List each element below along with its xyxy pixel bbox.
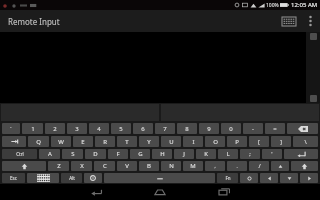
staticText: K xyxy=(204,150,208,158)
button[interactable]: M xyxy=(183,161,203,171)
button[interactable]: ] xyxy=(271,136,291,147)
staticText: 4 xyxy=(97,125,101,133)
button[interactable]: Recent apps xyxy=(199,184,249,200)
button[interactable]: [ xyxy=(249,136,269,147)
button[interactable]: 9 xyxy=(199,123,219,134)
button[interactable]: ctl xyxy=(240,173,258,183)
button[interactable]: enter xyxy=(284,149,318,159)
staticText: / xyxy=(258,162,261,170)
button[interactable]: X xyxy=(71,161,92,171)
staticText: 9 xyxy=(207,125,211,133)
button[interactable]: up xyxy=(271,161,289,171)
button[interactable]: U xyxy=(161,136,181,147)
button[interactable]: - xyxy=(243,123,263,134)
button[interactable]: shift xyxy=(2,161,46,171)
staticText: M xyxy=(190,162,196,170)
button[interactable]: Home xyxy=(135,184,185,200)
button[interactable]: shift xyxy=(291,161,318,171)
button[interactable]: H xyxy=(152,149,172,159)
staticText: [ xyxy=(258,138,260,146)
button[interactable]: C xyxy=(94,161,115,171)
staticText: X xyxy=(80,162,84,170)
staticText: ] xyxy=(280,138,282,146)
button[interactable]: Q xyxy=(28,136,49,147)
button[interactable]: D xyxy=(85,149,106,159)
staticText: Ctrl xyxy=(16,151,24,157)
button[interactable]: 8 xyxy=(177,123,197,134)
staticText: V xyxy=(125,162,129,170)
button[interactable]: tab xyxy=(2,136,26,147)
button[interactable]: W xyxy=(51,136,71,147)
button[interactable]: \ xyxy=(293,136,318,147)
button[interactable]: 3 xyxy=(67,123,87,134)
staticText: E xyxy=(81,138,85,146)
staticText: B xyxy=(147,162,151,170)
staticText: 1 xyxy=(31,125,35,133)
staticText: I xyxy=(192,138,195,146)
button[interactable]: I xyxy=(183,136,203,147)
button[interactable]: V xyxy=(117,161,137,171)
button[interactable]: Ctrl xyxy=(2,149,37,159)
staticText: J xyxy=(183,150,185,158)
button[interactable]: P xyxy=(227,136,247,147)
button[interactable]: 2 xyxy=(45,123,65,134)
button[interactable]: K xyxy=(196,149,216,159)
button[interactable]: Esc xyxy=(2,173,25,183)
button[interactable]: 7 xyxy=(155,123,175,134)
button[interactable]: Show keyboard xyxy=(278,10,300,32)
button[interactable]: 5 xyxy=(111,123,131,134)
button[interactable]: ; xyxy=(240,149,260,159)
staticText: Q xyxy=(36,138,41,146)
staticText: 7 xyxy=(163,125,167,133)
staticText: Fn xyxy=(225,175,231,181)
button[interactable]: = xyxy=(265,123,285,134)
button[interactable]: Back xyxy=(71,184,121,200)
staticText: 5 xyxy=(119,125,123,133)
staticText: F xyxy=(116,150,120,158)
staticText: D xyxy=(93,150,98,158)
button[interactable]: 0 xyxy=(221,123,241,134)
button[interactable]: L xyxy=(218,149,238,159)
staticText: L xyxy=(226,150,230,158)
button[interactable]: 4 xyxy=(89,123,109,134)
button[interactable]: Y xyxy=(139,136,159,147)
staticText: \ xyxy=(304,138,307,146)
button[interactable]: Z xyxy=(48,161,69,171)
button[interactable]: Fn xyxy=(217,173,238,183)
button[interactable]: G xyxy=(130,149,150,159)
button[interactable]: kb xyxy=(27,173,59,183)
button[interactable]: globe xyxy=(84,173,102,183)
button[interactable]: R xyxy=(95,136,115,147)
button[interactable]: J xyxy=(174,149,194,159)
button[interactable]: ` xyxy=(2,123,20,134)
button[interactable]: B xyxy=(139,161,159,171)
button[interactable]: / xyxy=(249,161,269,171)
staticText: Esc xyxy=(10,175,17,181)
button[interactable]: S xyxy=(62,149,83,159)
button[interactable]: T xyxy=(117,136,137,147)
button[interactable]: . xyxy=(227,161,247,171)
button[interactable]: down xyxy=(280,173,298,183)
button[interactable]: N xyxy=(161,161,181,171)
button[interactable]: O xyxy=(205,136,225,147)
button[interactable]: left xyxy=(260,173,278,183)
staticText: - xyxy=(252,125,254,133)
button[interactable]: bksp xyxy=(287,123,318,134)
button[interactable]: right xyxy=(300,173,318,183)
button[interactable]: A xyxy=(39,149,60,159)
button[interactable]: , xyxy=(205,161,225,171)
button[interactable]: F xyxy=(108,149,128,159)
button[interactable]: Alt xyxy=(61,173,82,183)
staticText: W xyxy=(58,138,64,146)
staticText: , xyxy=(214,163,216,169)
button[interactable]: space xyxy=(104,173,215,183)
staticText: R xyxy=(103,138,107,146)
button[interactable]: E xyxy=(73,136,93,147)
button[interactable]: More options xyxy=(300,10,320,32)
button[interactable]: 1 xyxy=(22,123,43,134)
staticText: 12:05 AM xyxy=(291,1,318,9)
button[interactable]: ' xyxy=(262,149,282,159)
button[interactable]: 6 xyxy=(133,123,153,134)
